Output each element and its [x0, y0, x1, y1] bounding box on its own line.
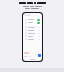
button[interactable] [24, 38, 41, 40]
button[interactable] [24, 32, 41, 34]
button[interactable] [24, 29, 41, 31]
button[interactable] [24, 18, 41, 21]
button[interactable] [24, 35, 41, 37]
button[interactable] [24, 21, 41, 24]
button[interactable] [24, 26, 41, 28]
button[interactable]: Add [38, 54, 41, 57]
button[interactable]: Blocked [24, 52, 29, 54]
